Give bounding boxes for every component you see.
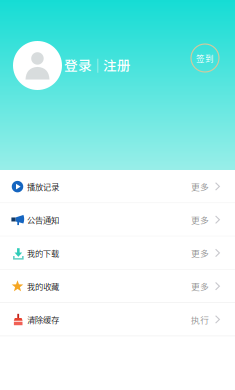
staticText: 签到 — [196, 52, 214, 64]
staticText: 清除缓存 — [27, 314, 59, 326]
staticText: | — [96, 56, 99, 73]
staticText: 执行 — [191, 313, 209, 326]
staticText: 更多 — [191, 247, 209, 259]
button[interactable]: 登录 — [61, 51, 134, 79]
button[interactable]: 公告通知 — [0, 203, 235, 236]
staticText: 更多 — [191, 180, 209, 193]
button[interactable]: 我的收藏 — [0, 270, 235, 303]
staticText: 登录 — [64, 55, 92, 75]
staticText: 更多 — [191, 280, 209, 293]
staticText: 注册 — [103, 55, 131, 75]
button[interactable]: 我的下载 — [0, 236, 235, 270]
staticText: 我的下载 — [27, 247, 59, 259]
button[interactable]: 清除缓存 — [0, 303, 235, 336]
button[interactable]: 播放记录 — [0, 170, 235, 203]
staticText: 我的收藏 — [27, 280, 59, 292]
staticText: 播放记录 — [27, 181, 59, 193]
staticText: 公告通知 — [27, 214, 59, 226]
button[interactable]: 签到 — [191, 44, 219, 72]
staticText: 更多 — [191, 213, 209, 226]
